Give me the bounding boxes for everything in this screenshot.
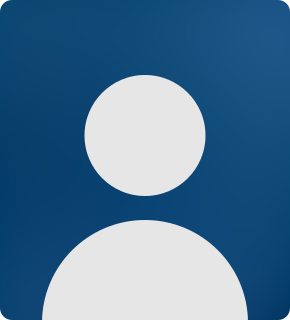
button[interactable]: Profile photo xyxy=(0,0,290,320)
